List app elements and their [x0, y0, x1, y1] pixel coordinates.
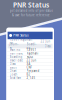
- staticText: & save for future reference: [12, 13, 50, 17]
- staticText: Boarding: [27, 43, 37, 50]
- staticText: Rajdhani: [27, 52, 39, 55]
- staticText: 3A: [27, 62, 31, 66]
- staticText: 22 Jun: [27, 59, 37, 62]
- staticText: 12951 Rajdhani Exp: [10, 38, 33, 45]
- staticText: CNF: [27, 66, 32, 69]
- staticText: Travel date: [10, 59, 24, 62]
- staticText: get detailed info of pnr status: [9, 9, 52, 12]
- staticText: PNR Status: [13, 1, 49, 9]
- staticText: Status: [10, 66, 17, 69]
- staticText: Train name: [10, 52, 24, 55]
- staticText: B2: [27, 73, 31, 76]
- staticText: Chart: [10, 69, 17, 73]
- staticText: 2,145: [27, 76, 36, 80]
- staticText: Train no: [10, 48, 21, 52]
- staticText: Total fare: [10, 76, 22, 80]
- staticText: PNR Status: [13, 34, 28, 37]
- staticText: Class: [10, 62, 16, 66]
- staticText: Boarding: [10, 55, 23, 59]
- staticText: Class: [45, 44, 51, 48]
- staticText: NDLS: [27, 55, 33, 59]
- staticText: 12951: [27, 48, 37, 52]
- staticText: Journey: [10, 43, 19, 50]
- staticText: Coach: [10, 73, 18, 76]
- staticText: 22 Jun: [41, 40, 51, 43]
- staticText: Prepared: [27, 69, 40, 73]
